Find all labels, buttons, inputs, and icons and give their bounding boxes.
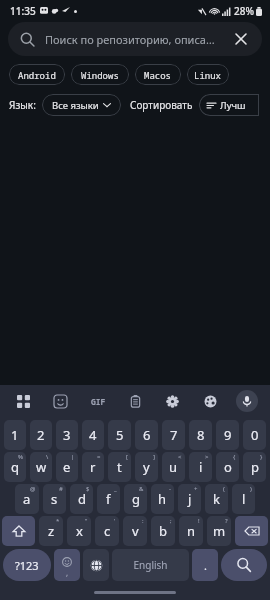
staticText: 9	[224, 426, 232, 444]
staticText: 2	[37, 426, 45, 444]
button[interactable]: t	[108, 452, 131, 482]
staticText: 1	[11, 426, 19, 444]
button[interactable]: Settings	[161, 390, 183, 412]
button[interactable]: p	[243, 452, 266, 482]
button[interactable]: 2	[30, 420, 52, 450]
button[interactable]: b	[151, 516, 175, 546]
staticText: *	[56, 517, 60, 525]
button[interactable]: .	[192, 549, 218, 581]
button[interactable]: Windows	[71, 64, 129, 85]
staticText: y	[143, 458, 150, 476]
staticText: !	[198, 517, 200, 525]
staticText: <	[178, 453, 182, 461]
button[interactable]: h	[151, 484, 174, 514]
staticText: e	[63, 458, 71, 476]
staticText: Сортировать	[130, 98, 193, 112]
button[interactable]: Clear	[232, 30, 250, 48]
staticText: Все языки	[52, 99, 99, 112]
button[interactable]: z	[39, 516, 63, 546]
staticText: u	[169, 458, 178, 476]
button[interactable]: Clipboard	[124, 390, 146, 412]
staticText: z	[48, 522, 55, 540]
button[interactable]: ?123	[3, 549, 51, 581]
button[interactable]: s	[43, 484, 66, 514]
staticText: @	[30, 485, 36, 493]
staticText: =	[97, 453, 101, 461]
staticText: Windows	[81, 69, 119, 81]
button[interactable]: 4	[82, 420, 104, 450]
button[interactable]: 7	[162, 420, 185, 450]
button[interactable]: 0	[243, 420, 266, 450]
staticText: g	[132, 490, 140, 508]
button[interactable]: n	[179, 516, 203, 546]
button[interactable]: y	[135, 452, 158, 482]
button[interactable]: Theme	[199, 390, 221, 412]
button[interactable]: Поиск по репозиторию, описа…	[8, 22, 262, 56]
staticText: a	[23, 490, 31, 508]
staticText: (	[223, 485, 225, 493]
button[interactable]: d	[70, 484, 93, 514]
staticText: [	[126, 453, 128, 461]
staticText: }	[260, 453, 263, 461]
staticText: Linux	[194, 69, 222, 81]
button[interactable]: g	[124, 484, 147, 514]
staticText: s	[51, 490, 58, 508]
button[interactable]: i	[189, 452, 212, 482]
staticText: Язык:	[9, 98, 36, 112]
button[interactable]: GIF	[87, 390, 109, 412]
button[interactable]: v	[123, 516, 147, 546]
button[interactable]: 9	[216, 420, 239, 450]
staticText: 5	[116, 426, 124, 444]
button[interactable]: English	[112, 549, 189, 581]
button[interactable]: o	[216, 452, 239, 482]
button[interactable]: Linux	[187, 64, 229, 85]
staticText: 6	[143, 426, 151, 444]
staticText: f	[106, 490, 111, 508]
button[interactable]: r	[82, 452, 104, 482]
button[interactable]: 8	[189, 420, 212, 450]
staticText: 0	[251, 426, 259, 444]
button[interactable]: Лучш	[199, 94, 259, 116]
button[interactable]: Voice input	[236, 390, 258, 412]
button[interactable]: 6	[135, 420, 158, 450]
button[interactable]: 5	[108, 420, 131, 450]
staticText: q	[11, 458, 19, 476]
button[interactable]: l	[232, 484, 255, 514]
staticText: .	[204, 558, 207, 573]
button[interactable]: u	[162, 452, 185, 482]
staticText: Поиск по репозиторию, описа…	[45, 32, 226, 47]
staticText: $	[86, 485, 90, 493]
staticText: &	[139, 485, 144, 493]
button[interactable]: 3	[56, 420, 78, 450]
button[interactable]: m	[207, 516, 231, 546]
button[interactable]: Stickers	[49, 390, 71, 412]
button[interactable]: e	[56, 452, 78, 482]
button[interactable]: w	[30, 452, 52, 482]
button[interactable]: Search	[221, 549, 267, 581]
button[interactable]: x	[67, 516, 91, 546]
staticText: 7	[170, 426, 178, 444]
button[interactable]: Macos	[135, 64, 181, 85]
staticText: '	[114, 517, 116, 525]
button[interactable]: Emoji	[54, 549, 80, 581]
button[interactable]: a	[15, 484, 39, 514]
button[interactable]: Backspace	[235, 516, 268, 546]
button[interactable]: j	[178, 484, 201, 514]
button[interactable]: Apps	[12, 390, 34, 412]
staticText: l	[242, 490, 246, 508]
staticText: b	[159, 522, 167, 540]
button[interactable]: Language	[83, 549, 109, 581]
staticText: |	[71, 453, 75, 461]
button[interactable]: 1	[4, 420, 26, 450]
staticText: "	[85, 517, 88, 525]
button[interactable]: q	[4, 452, 26, 482]
staticText: o	[224, 458, 232, 476]
button[interactable]: Android	[9, 64, 65, 85]
button[interactable]: f	[97, 484, 120, 514]
staticText: p	[251, 458, 259, 476]
button[interactable]: k	[205, 484, 228, 514]
button[interactable]: Shift	[2, 516, 35, 546]
button[interactable]: c	[95, 516, 119, 546]
staticText: English	[133, 558, 168, 572]
button[interactable]: Все языки	[42, 94, 121, 116]
